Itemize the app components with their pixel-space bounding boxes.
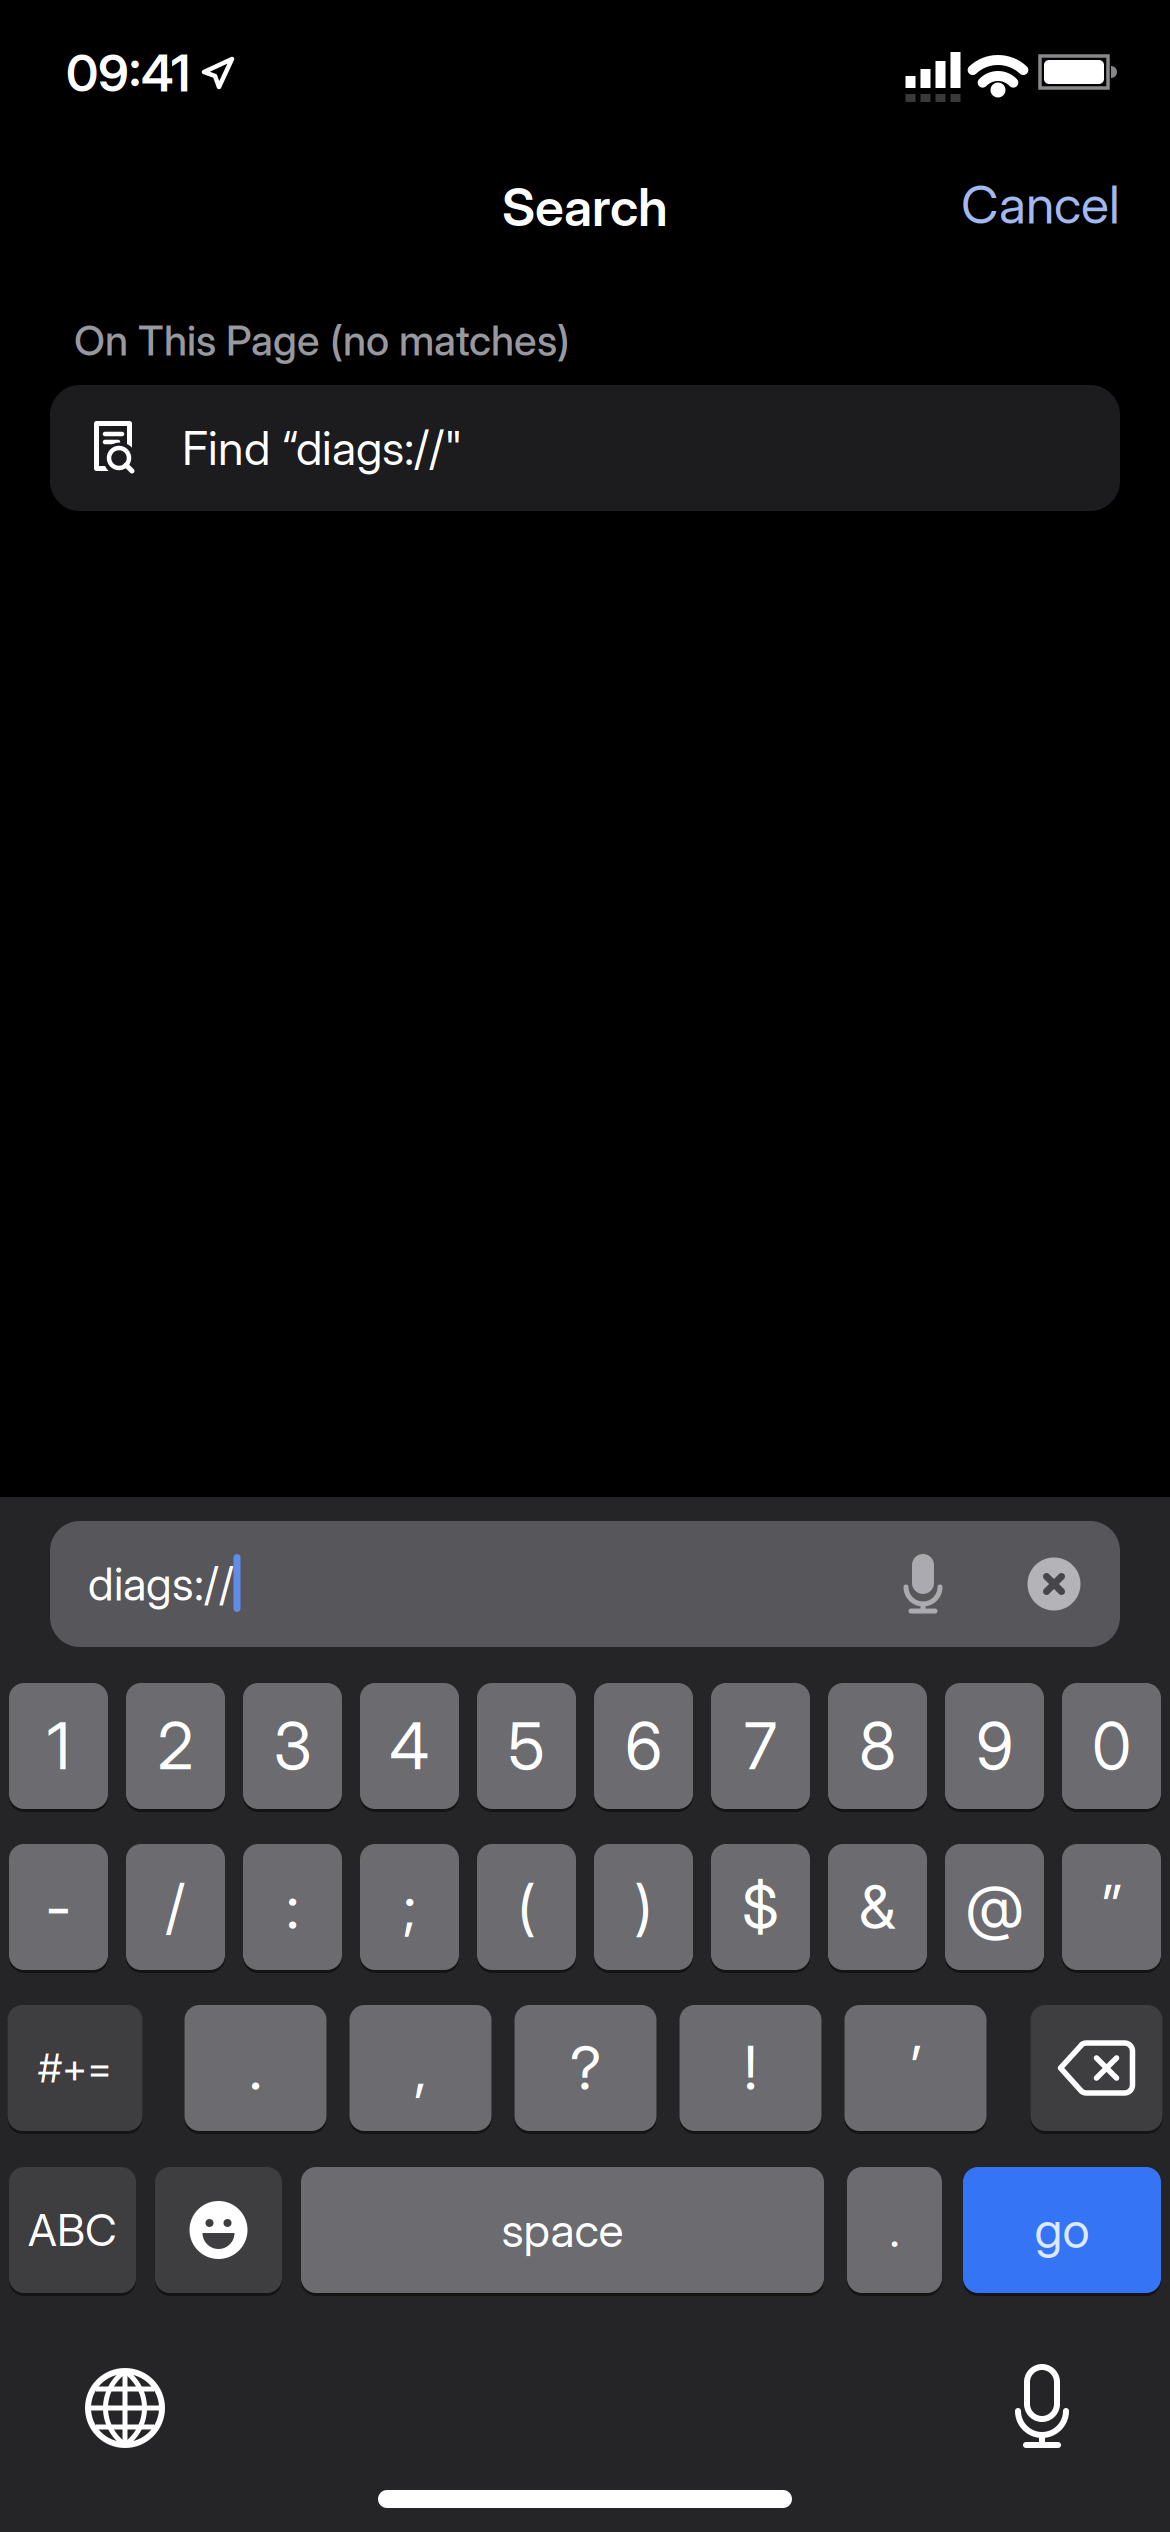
button[interactable]: ) — [594, 1842, 693, 1971]
button[interactable]: ” — [1062, 1842, 1161, 1971]
staticText: $ — [742, 1872, 779, 1942]
staticText: 6 — [625, 1708, 662, 1784]
button[interactable]: , — [349, 2003, 491, 2132]
staticText: ! — [744, 2033, 757, 2103]
staticText: . — [889, 2202, 899, 2258]
staticText: #+= — [38, 2044, 112, 2092]
staticText: ’ — [910, 2033, 921, 2103]
button[interactable]: #+= — [7, 2003, 142, 2132]
staticText: 7 — [744, 1708, 777, 1784]
button[interactable]: 9 — [945, 1681, 1044, 1810]
staticText: 0 — [1092, 1708, 1131, 1784]
button[interactable]: 4 — [360, 1681, 459, 1810]
staticText: , — [414, 2033, 427, 2103]
staticText: ( — [517, 1872, 535, 1942]
staticText: go — [1034, 2201, 1089, 2259]
button[interactable]: . — [184, 2003, 326, 2132]
button[interactable]: - — [9, 1842, 108, 1971]
button[interactable]: ABC — [9, 2165, 136, 2294]
button[interactable]: & — [828, 1842, 927, 1971]
staticText: ) — [634, 1872, 652, 1942]
staticText: 1 — [47, 1708, 70, 1784]
button[interactable]: / — [126, 1842, 225, 1971]
staticText: Find “diags://" — [182, 420, 463, 476]
staticText: : — [286, 1872, 299, 1942]
staticText: Cancel — [961, 174, 1120, 235]
button[interactable]: @ — [945, 1842, 1044, 1971]
staticText: 9 — [976, 1708, 1013, 1784]
staticText: 5 — [508, 1708, 545, 1784]
staticText: ” — [1101, 1872, 1121, 1942]
button[interactable]: : — [243, 1842, 342, 1971]
button[interactable]: go — [963, 2165, 1161, 2294]
button[interactable]: ( — [477, 1842, 576, 1971]
button[interactable]: Dictation — [901, 1554, 945, 1614]
staticText: 4 — [389, 1708, 429, 1784]
button[interactable]: Delete — [1030, 2003, 1162, 2132]
button[interactable]: ! — [679, 2003, 821, 2132]
button[interactable]: Dictation — [1014, 2367, 1070, 2449]
staticText: / — [165, 1872, 185, 1942]
button[interactable]: ; — [360, 1842, 459, 1971]
staticText: Search — [502, 176, 668, 238]
staticText: 8 — [859, 1708, 896, 1784]
button[interactable]: 3 — [243, 1681, 342, 1810]
button[interactable]: $ — [711, 1842, 810, 1971]
button[interactable]: 2 — [126, 1681, 225, 1810]
button[interactable]: 0 — [1062, 1681, 1161, 1810]
button[interactable]: ’ — [844, 2003, 986, 2132]
button[interactable]: Clear text — [1027, 1557, 1080, 1610]
button[interactable]: 8 — [828, 1681, 927, 1810]
staticText: . — [249, 2033, 262, 2103]
staticText: ? — [570, 2033, 601, 2103]
button[interactable]: Next keyboard — [85, 2368, 165, 2448]
staticText: - — [45, 1872, 71, 1942]
staticText: 09:41 — [66, 43, 190, 103]
button[interactable]: space — [301, 2165, 824, 2294]
staticText: diags:// — [88, 1557, 234, 1611]
staticText: @ — [965, 1872, 1023, 1942]
staticText: 3 — [273, 1708, 311, 1784]
button[interactable]: 7 — [711, 1681, 810, 1810]
button[interactable]: Find “diags://" — [50, 385, 1120, 511]
button[interactable]: Emoji — [155, 2165, 282, 2294]
button[interactable]: 5 — [477, 1681, 576, 1810]
button[interactable]: . — [847, 2165, 942, 2294]
button[interactable]: 1 — [9, 1681, 108, 1810]
staticText: 2 — [157, 1708, 193, 1784]
staticText: ; — [403, 1872, 416, 1942]
staticText: space — [501, 2202, 623, 2258]
button[interactable]: 6 — [594, 1681, 693, 1810]
staticText: & — [859, 1872, 896, 1942]
button[interactable]: ? — [514, 2003, 656, 2132]
staticText: ABC — [28, 2204, 117, 2256]
staticText: On This Page (no matches) — [74, 316, 570, 365]
button[interactable]: Cancel — [961, 174, 1120, 235]
